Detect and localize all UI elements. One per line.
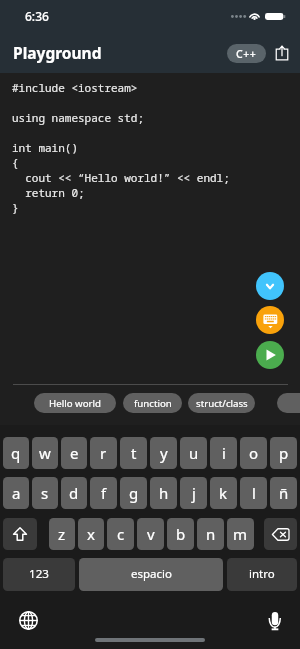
button[interactable]: Backspace [264, 518, 297, 550]
staticText: function [134, 397, 172, 410]
staticText: x [87, 524, 95, 544]
button[interactable]: x [78, 518, 104, 550]
staticText: using namespace std; [12, 110, 144, 125]
staticText: v [147, 524, 155, 544]
button[interactable]: i [210, 437, 237, 469]
staticText: return 0; [12, 185, 85, 200]
button[interactable]: Shift [3, 518, 37, 550]
staticText: cout << “Hello world!” << endl; [12, 170, 230, 185]
button[interactable]: b [167, 518, 194, 550]
button[interactable]: 123 [3, 558, 75, 591]
button[interactable]: q [3, 437, 29, 469]
staticText: i [222, 443, 226, 463]
button[interactable]: C++ [227, 44, 266, 63]
button[interactable]: c [107, 518, 134, 550]
button[interactable]: l [240, 477, 267, 509]
button[interactable]: function [123, 393, 182, 413]
staticText: 123 [29, 566, 49, 582]
staticText: u [189, 443, 199, 463]
staticText: e [70, 443, 79, 463]
staticText: C++ [236, 47, 257, 61]
staticText: z [58, 524, 66, 544]
staticText: y [160, 443, 168, 463]
staticText: p [279, 443, 289, 463]
staticText: struct/class [196, 397, 248, 410]
button[interactable]: s [32, 477, 58, 509]
button[interactable]: p [270, 437, 297, 469]
button[interactable]: f [90, 477, 117, 509]
button[interactable]: intro [227, 558, 297, 591]
button[interactable]: d [61, 477, 87, 509]
staticText: j [192, 483, 196, 503]
staticText: int main() [12, 140, 78, 155]
button[interactable] [277, 393, 300, 413]
staticText: h [159, 483, 169, 503]
button[interactable]: espacio [79, 558, 223, 591]
button[interactable]: Collapse [256, 272, 284, 300]
staticText: { [12, 155, 19, 170]
button[interactable]: h [150, 477, 177, 509]
staticText: k [219, 483, 228, 503]
staticText: t [131, 443, 137, 463]
staticText: intro [249, 566, 275, 582]
button[interactable]: m [227, 518, 254, 550]
staticText: o [249, 443, 259, 463]
button[interactable]: Share [272, 43, 292, 63]
staticText: m [233, 524, 248, 544]
staticText: w [39, 443, 51, 463]
staticText: s [41, 483, 49, 503]
staticText: ñ [279, 483, 289, 503]
staticText: r [100, 443, 107, 463]
staticText: Playground [13, 42, 102, 63]
button[interactable]: Change language [17, 609, 40, 632]
staticText: espacio [131, 566, 172, 582]
button[interactable]: r [90, 437, 117, 469]
button[interactable]: v [137, 518, 164, 550]
button[interactable]: a [3, 477, 29, 509]
button[interactable]: struct/class [188, 393, 255, 413]
button[interactable]: t [120, 437, 147, 469]
button[interactable]: n [197, 518, 224, 550]
staticText: Hello world [49, 397, 101, 410]
button[interactable]: ñ [270, 477, 297, 509]
button[interactable]: o [240, 437, 267, 469]
staticText: } [12, 200, 19, 215]
button[interactable]: z [49, 518, 75, 550]
button[interactable]: e [61, 437, 87, 469]
button[interactable]: Hide keyboard [256, 306, 284, 334]
staticText: b [176, 524, 186, 544]
staticText: d [69, 483, 79, 503]
button[interactable]: j [180, 477, 207, 509]
staticText: a [12, 483, 21, 503]
staticText: f [101, 483, 107, 503]
button[interactable]: Run [256, 341, 284, 369]
staticText: l [252, 483, 256, 503]
button[interactable]: y [150, 437, 177, 469]
staticText: g [129, 483, 139, 503]
button[interactable]: Dictate [263, 609, 286, 632]
staticText: #include <iostream> [12, 80, 138, 95]
button[interactable]: w [32, 437, 58, 469]
button[interactable]: k [210, 477, 237, 509]
staticText: q [11, 443, 21, 463]
button[interactable]: g [120, 477, 147, 509]
staticText: n [206, 524, 216, 544]
staticText: 6:36 [25, 8, 49, 24]
button[interactable]: u [180, 437, 207, 469]
staticText: c [117, 524, 125, 544]
button[interactable]: Hello world [34, 393, 116, 413]
